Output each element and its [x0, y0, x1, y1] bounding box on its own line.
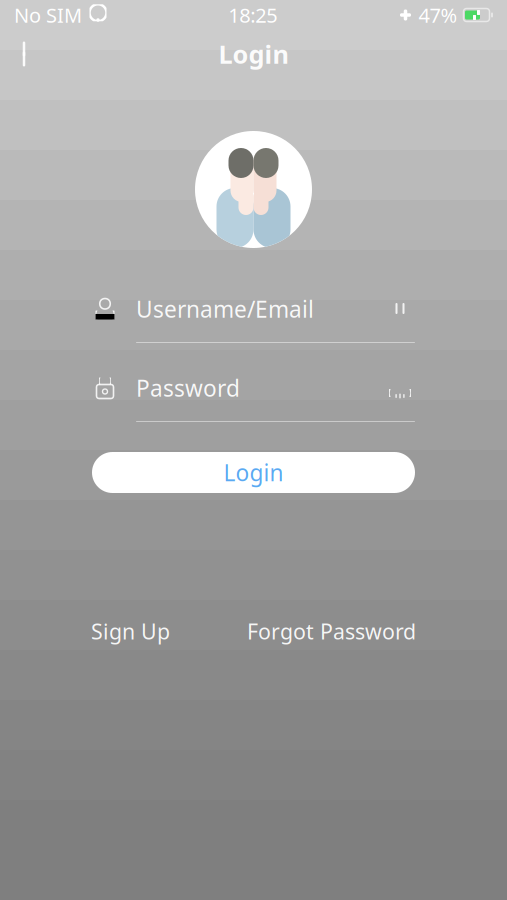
staticText: Login [218, 37, 288, 71]
staticText: Password [136, 373, 240, 403]
staticText: Username/Email [136, 294, 314, 324]
staticText: 18:25 [228, 2, 277, 28]
button[interactable]: Sign Up [85, 611, 176, 651]
staticText: Forgot Password [247, 617, 416, 645]
button[interactable]: Forgot Password [241, 611, 422, 651]
button[interactable]: Show password [385, 373, 415, 403]
button[interactable]: Show saved accounts [385, 294, 415, 324]
button[interactable]: Back [0, 32, 54, 76]
staticText: No SIM [14, 2, 82, 28]
staticText: Sign Up [91, 617, 170, 645]
staticText: 47% [418, 2, 457, 28]
button[interactable]: Login [92, 452, 415, 493]
staticText: Login [223, 457, 283, 487]
